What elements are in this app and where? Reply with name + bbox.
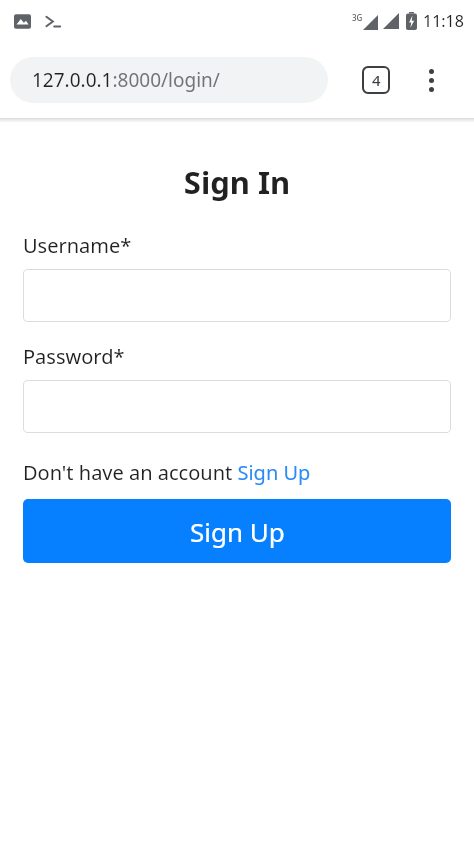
staticText: 4 — [372, 70, 381, 90]
staticText: Don't have an account Sign Up — [23, 459, 311, 486]
staticText: Sign Up — [190, 514, 285, 549]
staticText: 3G — [352, 12, 363, 23]
button[interactable]: Tabs, 4 open — [358, 62, 394, 98]
staticText: Username* — [23, 232, 132, 259]
button[interactable]: Text input field — [23, 380, 451, 433]
button[interactable]: More options — [414, 63, 448, 97]
button[interactable]: Don't have an account Sign Up — [23, 459, 311, 486]
staticText: 11:18 — [423, 10, 464, 32]
button[interactable]: 127.0.0.1:8000/login/ — [10, 57, 328, 103]
button[interactable]: Sign Up — [23, 499, 451, 563]
staticText: 127.0.0.1:8000/login/ — [32, 67, 220, 93]
staticText: Sign In — [0, 161, 474, 203]
staticText: Password* — [23, 343, 125, 370]
button[interactable]: Text input field — [23, 269, 451, 322]
